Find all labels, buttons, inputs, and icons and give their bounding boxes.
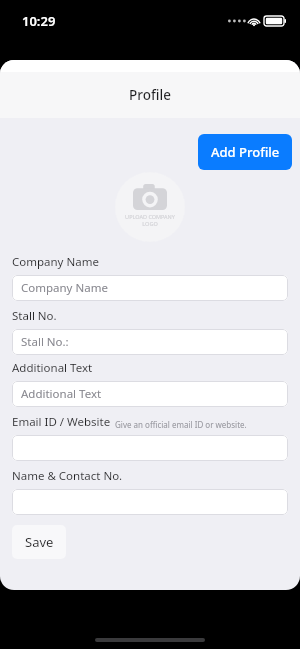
- staticText: 10:29: [22, 12, 56, 30]
- staticText: Give an official email ID or website.: [115, 419, 247, 430]
- staticText: Company Name: [21, 280, 108, 296]
- staticText: LOGO: [142, 220, 158, 227]
- staticText: Company Name: [12, 254, 99, 270]
- staticText: UPLOAD COMPANY: [125, 213, 175, 220]
- staticText: Save: [25, 533, 54, 551]
- button[interactable]: Save: [12, 525, 66, 559]
- staticText: Name & Contact No.: [12, 468, 123, 484]
- staticText: Profile: [129, 86, 171, 104]
- staticText: Additional Text: [21, 386, 102, 402]
- staticText: Add Profile: [211, 143, 280, 161]
- button[interactable]: Company Name: [12, 275, 288, 301]
- button[interactable]: [12, 489, 288, 515]
- staticText: Email ID / Website: [12, 414, 111, 430]
- button[interactable]: Add Profile: [198, 134, 292, 170]
- staticText: Stall No.: [12, 308, 57, 324]
- button[interactable]: Additional Text: [12, 381, 288, 407]
- button[interactable]: Stall No.:: [12, 329, 288, 355]
- staticText: Additional Text: [12, 360, 93, 376]
- staticText: Stall No.:: [21, 334, 69, 350]
- button[interactable]: [12, 435, 288, 461]
- button[interactable]: Upload company logo: [115, 172, 185, 242]
